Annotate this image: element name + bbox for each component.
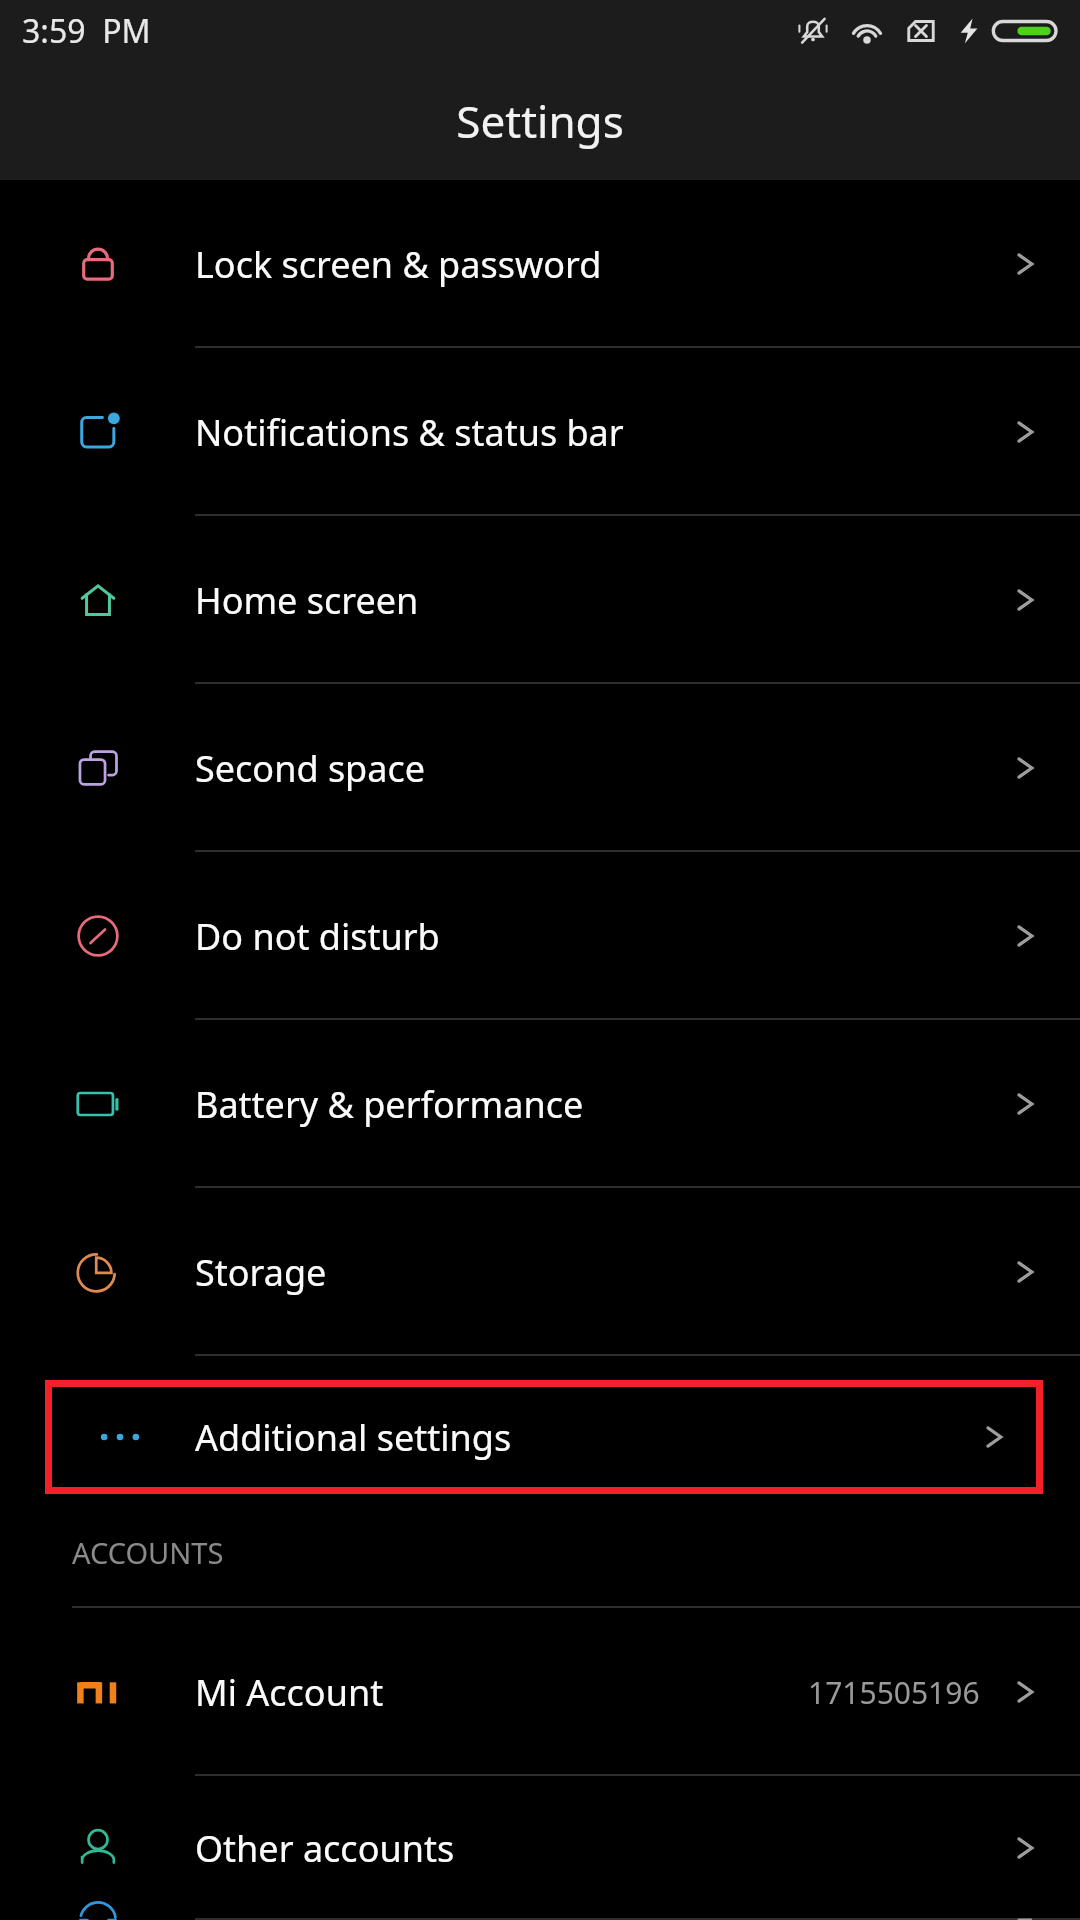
staticText: Mi Account <box>195 1668 384 1717</box>
staticText: Other accounts <box>195 1824 455 1873</box>
button[interactable]: Additional settings <box>45 1380 1043 1494</box>
staticText: Notifications & status bar <box>195 408 624 457</box>
button[interactable]: Other accounts <box>0 1776 1080 1920</box>
staticText: Settings <box>456 91 624 151</box>
staticText: ACCOUNTS <box>72 1533 224 1572</box>
staticText: 1715505196 <box>808 1672 980 1713</box>
staticText: Additional settings <box>195 1413 512 1462</box>
button[interactable]: Notifications & status bar <box>0 348 1080 516</box>
button[interactable]: Lock screen & password <box>0 180 1080 348</box>
button[interactable]: Storage <box>0 1188 1080 1356</box>
button[interactable]: Battery & performance <box>0 1020 1080 1188</box>
staticText: Home screen <box>195 576 419 625</box>
staticText: Second space <box>195 744 426 793</box>
button[interactable]: Second space <box>0 684 1080 852</box>
button[interactable]: Do not disturb <box>0 852 1080 1020</box>
staticText: Battery & performance <box>195 1080 584 1129</box>
button[interactable]: Mi Account <box>0 1608 1080 1776</box>
staticText: 3:59 PM <box>22 9 151 53</box>
staticText: Do not disturb <box>195 912 440 961</box>
button[interactable]: Home screen <box>0 516 1080 684</box>
staticText: Lock screen & password <box>195 240 602 289</box>
staticText: Storage <box>195 1248 327 1297</box>
